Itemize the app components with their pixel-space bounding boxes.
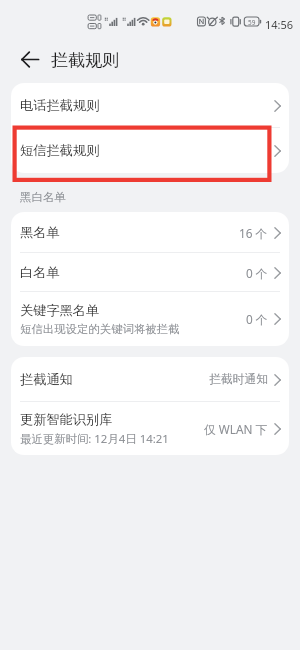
staticText: 16 个: [239, 225, 268, 241]
button[interactable]: 短信拦截规则: [11, 128, 289, 173]
staticText: 14:56: [265, 17, 294, 32]
staticText: 0 个: [246, 265, 268, 281]
button[interactable]: 白名单: [11, 253, 289, 292]
staticText: 拦截规则: [51, 50, 119, 71]
button[interactable]: 拦截通知: [11, 357, 289, 402]
button[interactable]: 更新智能识别库: [11, 402, 289, 455]
staticText: 更新智能识别库: [20, 411, 113, 428]
staticText: 白名单: [20, 264, 60, 281]
button[interactable]: 关键字黑名单: [11, 292, 289, 346]
button[interactable]: 电话拦截规则: [11, 83, 289, 128]
staticText: 仅 WLAN 下: [204, 421, 268, 437]
staticText: 短信出现设定的关键词将被拦截: [20, 322, 180, 336]
staticText: 短信拦截规则: [20, 142, 100, 159]
staticText: 拦截通知: [20, 371, 73, 388]
staticText: 关键字黑名单: [20, 302, 100, 319]
staticText: 最近更新时间: 12月4日 14:21: [20, 431, 169, 447]
staticText: 0 个: [246, 311, 268, 327]
staticText: 黑白名单: [20, 190, 66, 204]
staticText: 59: [248, 18, 256, 27]
button[interactable]: Back: [17, 47, 42, 72]
staticText: 黑名单: [20, 224, 60, 241]
button[interactable]: 黑名单: [11, 212, 289, 253]
staticText: 拦截时通知: [209, 372, 268, 387]
staticText: 电话拦截规则: [20, 97, 100, 114]
